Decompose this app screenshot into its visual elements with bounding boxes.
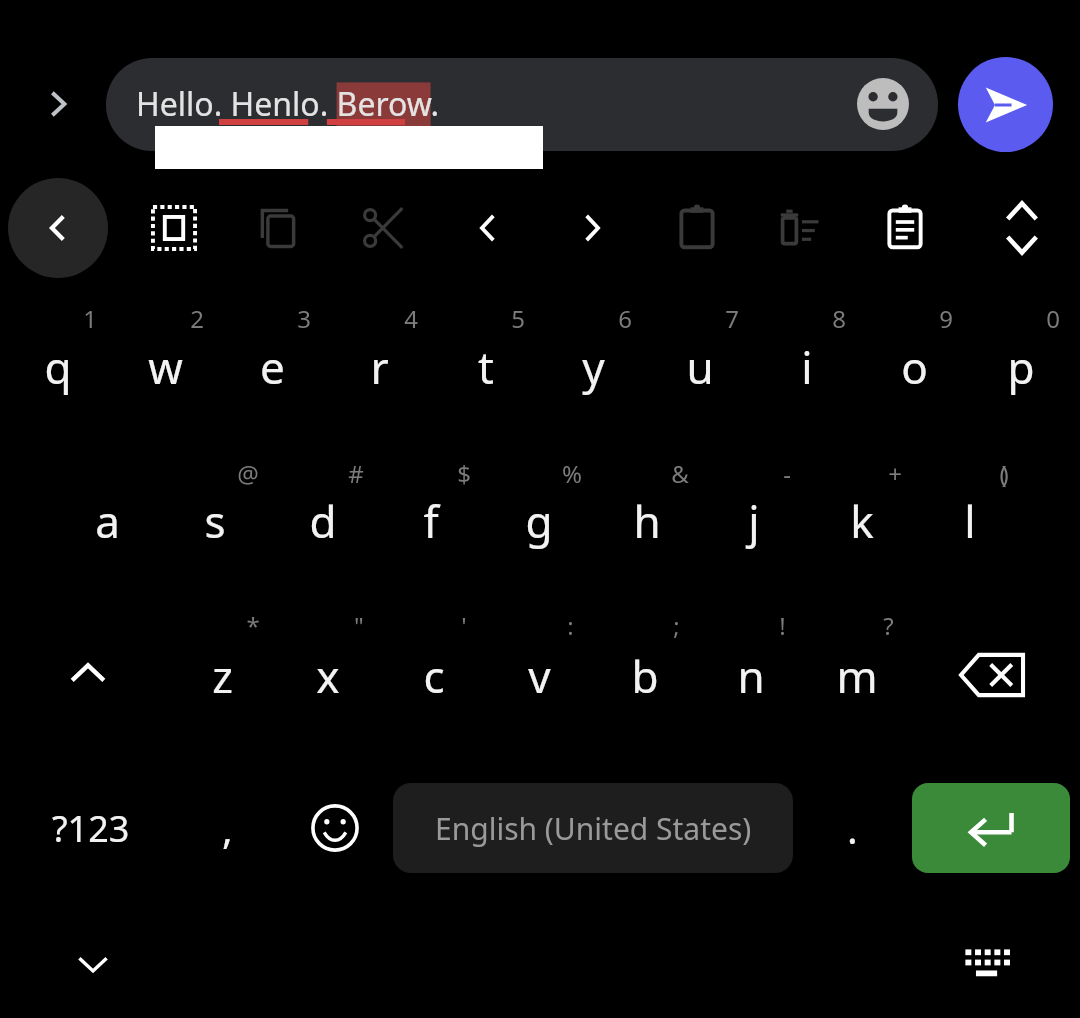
button[interactable]: c bbox=[381, 629, 487, 723]
staticText: 3 bbox=[297, 302, 311, 335]
staticText: 4 bbox=[404, 302, 418, 335]
button[interactable]: x bbox=[275, 629, 381, 723]
button[interactable]: k bbox=[809, 474, 915, 568]
staticText: j bbox=[748, 491, 760, 551]
button[interactable]: Switch keyboard bbox=[942, 918, 1032, 1008]
button[interactable]: Emoji keyboard bbox=[290, 783, 380, 873]
staticText: o bbox=[901, 337, 928, 397]
button[interactable]: q bbox=[5, 320, 111, 414]
staticText: y bbox=[582, 337, 605, 397]
button[interactable]: z bbox=[169, 629, 275, 723]
staticText: w bbox=[148, 337, 183, 397]
button[interactable]: . bbox=[810, 783, 895, 873]
staticText: * bbox=[246, 609, 260, 642]
staticText: k bbox=[850, 491, 874, 551]
button[interactable]: Paste bbox=[649, 180, 745, 276]
button[interactable]: Shift bbox=[28, 628, 148, 722]
button[interactable]: Copy bbox=[230, 180, 326, 276]
staticText: d bbox=[309, 491, 337, 551]
staticText: ) bbox=[1001, 457, 1009, 490]
staticText: ! bbox=[779, 609, 786, 642]
button[interactable]: y bbox=[540, 320, 646, 414]
button[interactable]: r bbox=[326, 320, 432, 414]
staticText: e bbox=[260, 337, 285, 397]
button[interactable]: Cut bbox=[335, 180, 431, 276]
button[interactable]: Emoji bbox=[843, 64, 923, 144]
button[interactable]: e bbox=[219, 320, 325, 414]
staticText: $ bbox=[457, 457, 471, 490]
staticText: g bbox=[525, 491, 553, 551]
staticText: % bbox=[562, 457, 582, 490]
staticText: : bbox=[567, 609, 574, 642]
staticText: u bbox=[686, 337, 714, 397]
staticText: 1 bbox=[83, 302, 97, 335]
button[interactable]: a bbox=[54, 474, 160, 568]
staticText: ' bbox=[461, 609, 467, 642]
staticText: s bbox=[204, 491, 226, 551]
button[interactable]: Backspace bbox=[930, 628, 1054, 722]
button[interactable]: p bbox=[968, 320, 1074, 414]
button[interactable]: Send bbox=[958, 57, 1053, 152]
staticText: c bbox=[423, 646, 445, 706]
staticText: n bbox=[737, 646, 765, 706]
button[interactable]: g bbox=[486, 474, 592, 568]
staticText: , bbox=[222, 801, 233, 855]
button[interactable]: Move up or down bbox=[974, 180, 1070, 276]
button[interactable]: v bbox=[486, 629, 592, 723]
button[interactable]: j bbox=[701, 474, 807, 568]
staticText: p bbox=[1007, 337, 1035, 397]
button[interactable]: f bbox=[378, 474, 484, 568]
staticText: 7 bbox=[725, 302, 739, 335]
button[interactable]: Move left bbox=[440, 180, 536, 276]
staticText: ; bbox=[673, 609, 680, 642]
button[interactable]: u bbox=[647, 320, 753, 414]
staticText: h bbox=[633, 491, 661, 551]
button[interactable]: Move right bbox=[544, 180, 640, 276]
button[interactable] bbox=[106, 58, 938, 151]
staticText: q bbox=[44, 337, 72, 397]
button[interactable]: Clear clipboard bbox=[753, 180, 849, 276]
button[interactable]: Select all bbox=[126, 180, 222, 276]
button[interactable]: s bbox=[162, 474, 268, 568]
staticText: - bbox=[783, 457, 791, 490]
staticText: t bbox=[478, 337, 494, 397]
staticText: ?123 bbox=[52, 804, 130, 853]
staticText: 5 bbox=[511, 302, 525, 335]
staticText: b bbox=[631, 646, 659, 706]
staticText: z bbox=[212, 646, 233, 706]
button[interactable]: o bbox=[861, 320, 967, 414]
button[interactable]: n bbox=[698, 629, 804, 723]
button[interactable]: d bbox=[270, 474, 376, 568]
button[interactable]: Hide keyboard bbox=[48, 918, 138, 1008]
staticText: ? bbox=[883, 609, 894, 642]
button[interactable]: Enter bbox=[912, 783, 1070, 873]
staticText: i bbox=[801, 337, 813, 397]
button[interactable]: Expand bbox=[18, 64, 98, 144]
staticText: English (United States) bbox=[435, 808, 752, 849]
button[interactable]: , bbox=[180, 783, 275, 873]
button[interactable]: m bbox=[804, 629, 910, 723]
button[interactable]: English (United States) bbox=[393, 783, 793, 873]
staticText: @ bbox=[237, 457, 259, 490]
staticText: m bbox=[836, 646, 878, 706]
staticText: ( bbox=[999, 457, 1007, 490]
button[interactable]: t bbox=[433, 320, 539, 414]
staticText: & bbox=[671, 457, 689, 490]
button[interactable]: h bbox=[594, 474, 700, 568]
button[interactable]: w bbox=[112, 320, 218, 414]
button[interactable]: b bbox=[592, 629, 698, 723]
staticText: 6 bbox=[618, 302, 632, 335]
staticText: r bbox=[370, 337, 389, 397]
staticText: l bbox=[964, 491, 976, 551]
button[interactable]: l bbox=[917, 474, 1023, 568]
staticText: + bbox=[888, 457, 902, 490]
staticText: f bbox=[423, 491, 439, 551]
staticText: 8 bbox=[832, 302, 846, 335]
staticText: 9 bbox=[939, 302, 953, 335]
button[interactable]: i bbox=[754, 320, 860, 414]
button[interactable]: Clipboard bbox=[857, 180, 953, 276]
staticText: " bbox=[354, 609, 364, 642]
button[interactable]: Back bbox=[8, 178, 108, 278]
staticText: x bbox=[316, 646, 340, 706]
button[interactable]: ?123 bbox=[28, 783, 153, 873]
